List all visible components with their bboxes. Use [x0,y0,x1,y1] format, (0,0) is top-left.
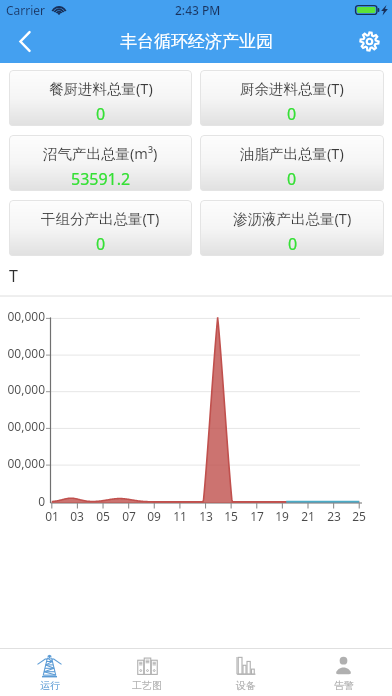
staticText: 53591.2 [71,168,131,190]
staticText: 0 [0,493,45,509]
staticText: 0 [287,103,297,125]
staticText: 23 [322,508,346,524]
staticText: 干组分产出总量(T) [41,208,160,228]
button[interactable]: Back [0,20,50,63]
staticText: 03 [65,508,89,524]
staticText: 21 [296,508,320,524]
staticText: 13 [194,508,218,524]
staticText: 15 [219,508,243,524]
button[interactable]: 干组分产出总量(T) [9,200,192,256]
staticText: 0 [288,233,298,255]
staticText: 00,000 [0,455,45,471]
button[interactable]: 告警 [294,649,392,696]
staticText: 19 [270,508,294,524]
staticText: 07 [117,508,141,524]
staticText: 0 [287,168,297,190]
staticText: 01 [40,508,64,524]
button[interactable]: Settings [346,20,392,63]
staticText: 告警 [334,679,354,692]
staticText: 00,000 [0,418,45,434]
staticText: 17 [245,508,269,524]
staticText: Carrier [6,2,46,18]
staticText: 餐厨进料总量(T) [49,78,153,98]
staticText: 设备 [236,679,256,692]
staticText: 运行 [40,679,60,692]
staticText: 00,000 [0,345,45,361]
staticText: T [9,265,18,287]
staticText: 0 [96,233,106,255]
staticText: 09 [142,508,166,524]
button[interactable]: 油脂产出总量(T) [200,135,384,191]
staticText: 沼气产出总量(m³) [43,143,158,163]
staticText: 11 [168,508,192,524]
button[interactable]: 厨余进料总量(T) [200,70,384,126]
staticText: 00,000 [0,308,45,324]
button[interactable]: 沼气产出总量(m³) [9,135,192,191]
staticText: 0 [96,103,106,125]
button[interactable]: 渗沥液产出总量(T) [200,200,384,256]
button[interactable]: 运行 [0,649,98,696]
staticText: 渗沥液产出总量(T) [233,208,352,228]
staticText: 05 [91,508,115,524]
staticText: 2:43 PM [175,2,221,18]
staticText: 00,000 [0,381,45,397]
button[interactable]: 工艺图 [98,649,196,696]
button[interactable]: 设备 [196,649,294,696]
button[interactable]: 餐厨进料总量(T) [9,70,192,126]
staticText: 25 [347,508,371,524]
staticText: 丰台循环经济产业园 [120,31,273,52]
staticText: 油脂产出总量(T) [240,143,344,163]
staticText: 工艺图 [132,679,162,692]
staticText: 厨余进料总量(T) [240,78,344,98]
